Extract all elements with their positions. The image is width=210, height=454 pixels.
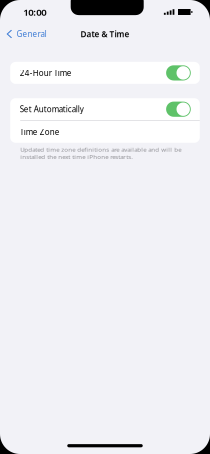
staticText: Time Zone [20,126,60,137]
button[interactable]: General [0,26,51,42]
staticText: 24-Hour Time [20,67,72,78]
staticText: Date & Time [80,28,129,40]
staticText: 10:00 [23,5,46,19]
staticText: Set Automatically [20,104,84,115]
staticText: General [17,29,47,39]
button[interactable]: 24-Hour Time [10,62,200,84]
staticText: Updated time zone definitions are availa… [20,145,181,161]
button[interactable]: Set Automatically [10,98,200,120]
button[interactable]: Time Zone [10,121,200,143]
